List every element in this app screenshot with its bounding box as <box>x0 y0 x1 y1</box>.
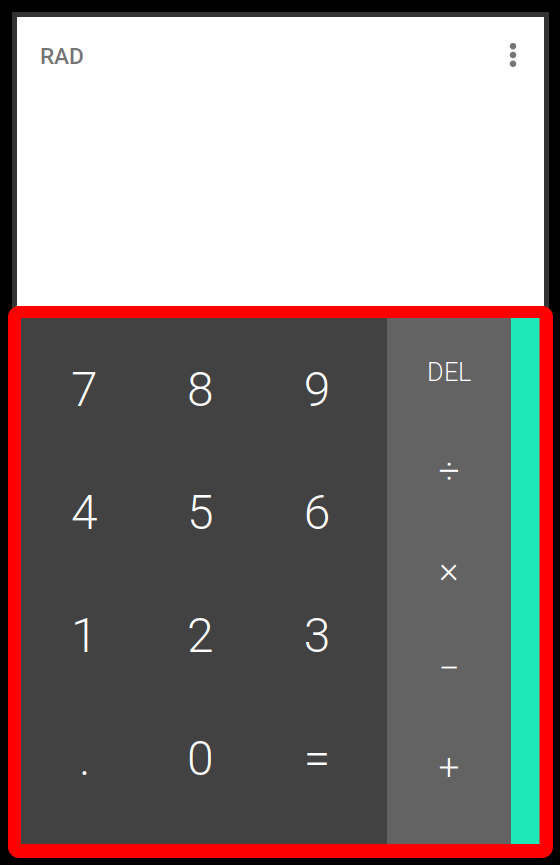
button[interactable]: Divide <box>387 422 511 520</box>
button[interactable]: Multiply <box>387 520 511 619</box>
staticText: = <box>304 730 331 787</box>
staticText: DEL <box>427 357 471 387</box>
staticText: RAD <box>40 43 84 70</box>
button[interactable]: 6 <box>265 451 387 574</box>
staticText: × <box>439 548 459 591</box>
button[interactable]: 7 <box>21 328 143 451</box>
staticText: ÷ <box>438 449 459 493</box>
staticText: 8 <box>187 361 214 418</box>
staticText: 7 <box>71 361 98 418</box>
staticText: 9 <box>304 361 331 418</box>
staticText: − <box>438 646 459 690</box>
button[interactable]: 0 <box>143 697 265 820</box>
button[interactable]: RAD <box>40 29 92 76</box>
button[interactable]: 9 <box>265 328 387 451</box>
button[interactable]: . <box>21 697 143 820</box>
staticText: 5 <box>187 484 214 541</box>
button[interactable]: 5 <box>143 451 265 574</box>
staticText: + <box>438 745 459 788</box>
staticText: 0 <box>187 730 214 787</box>
button[interactable]: = <box>265 697 387 820</box>
button[interactable]: More options <box>491 33 535 77</box>
button[interactable]: 1 <box>21 574 143 697</box>
button[interactable]: 2 <box>143 574 265 697</box>
staticText: . <box>79 730 90 787</box>
staticText: 2 <box>187 607 214 664</box>
staticText: 1 <box>71 607 98 664</box>
button[interactable]: 4 <box>21 451 143 574</box>
staticText: 3 <box>304 607 331 664</box>
button[interactable]: Add <box>387 717 511 816</box>
staticText: 6 <box>304 484 331 541</box>
button[interactable]: Subtract <box>387 619 511 717</box>
button[interactable]: 3 <box>265 574 387 697</box>
button[interactable]: Delete <box>387 323 511 422</box>
button[interactable]: 8 <box>143 328 265 451</box>
staticText: 4 <box>71 484 98 541</box>
